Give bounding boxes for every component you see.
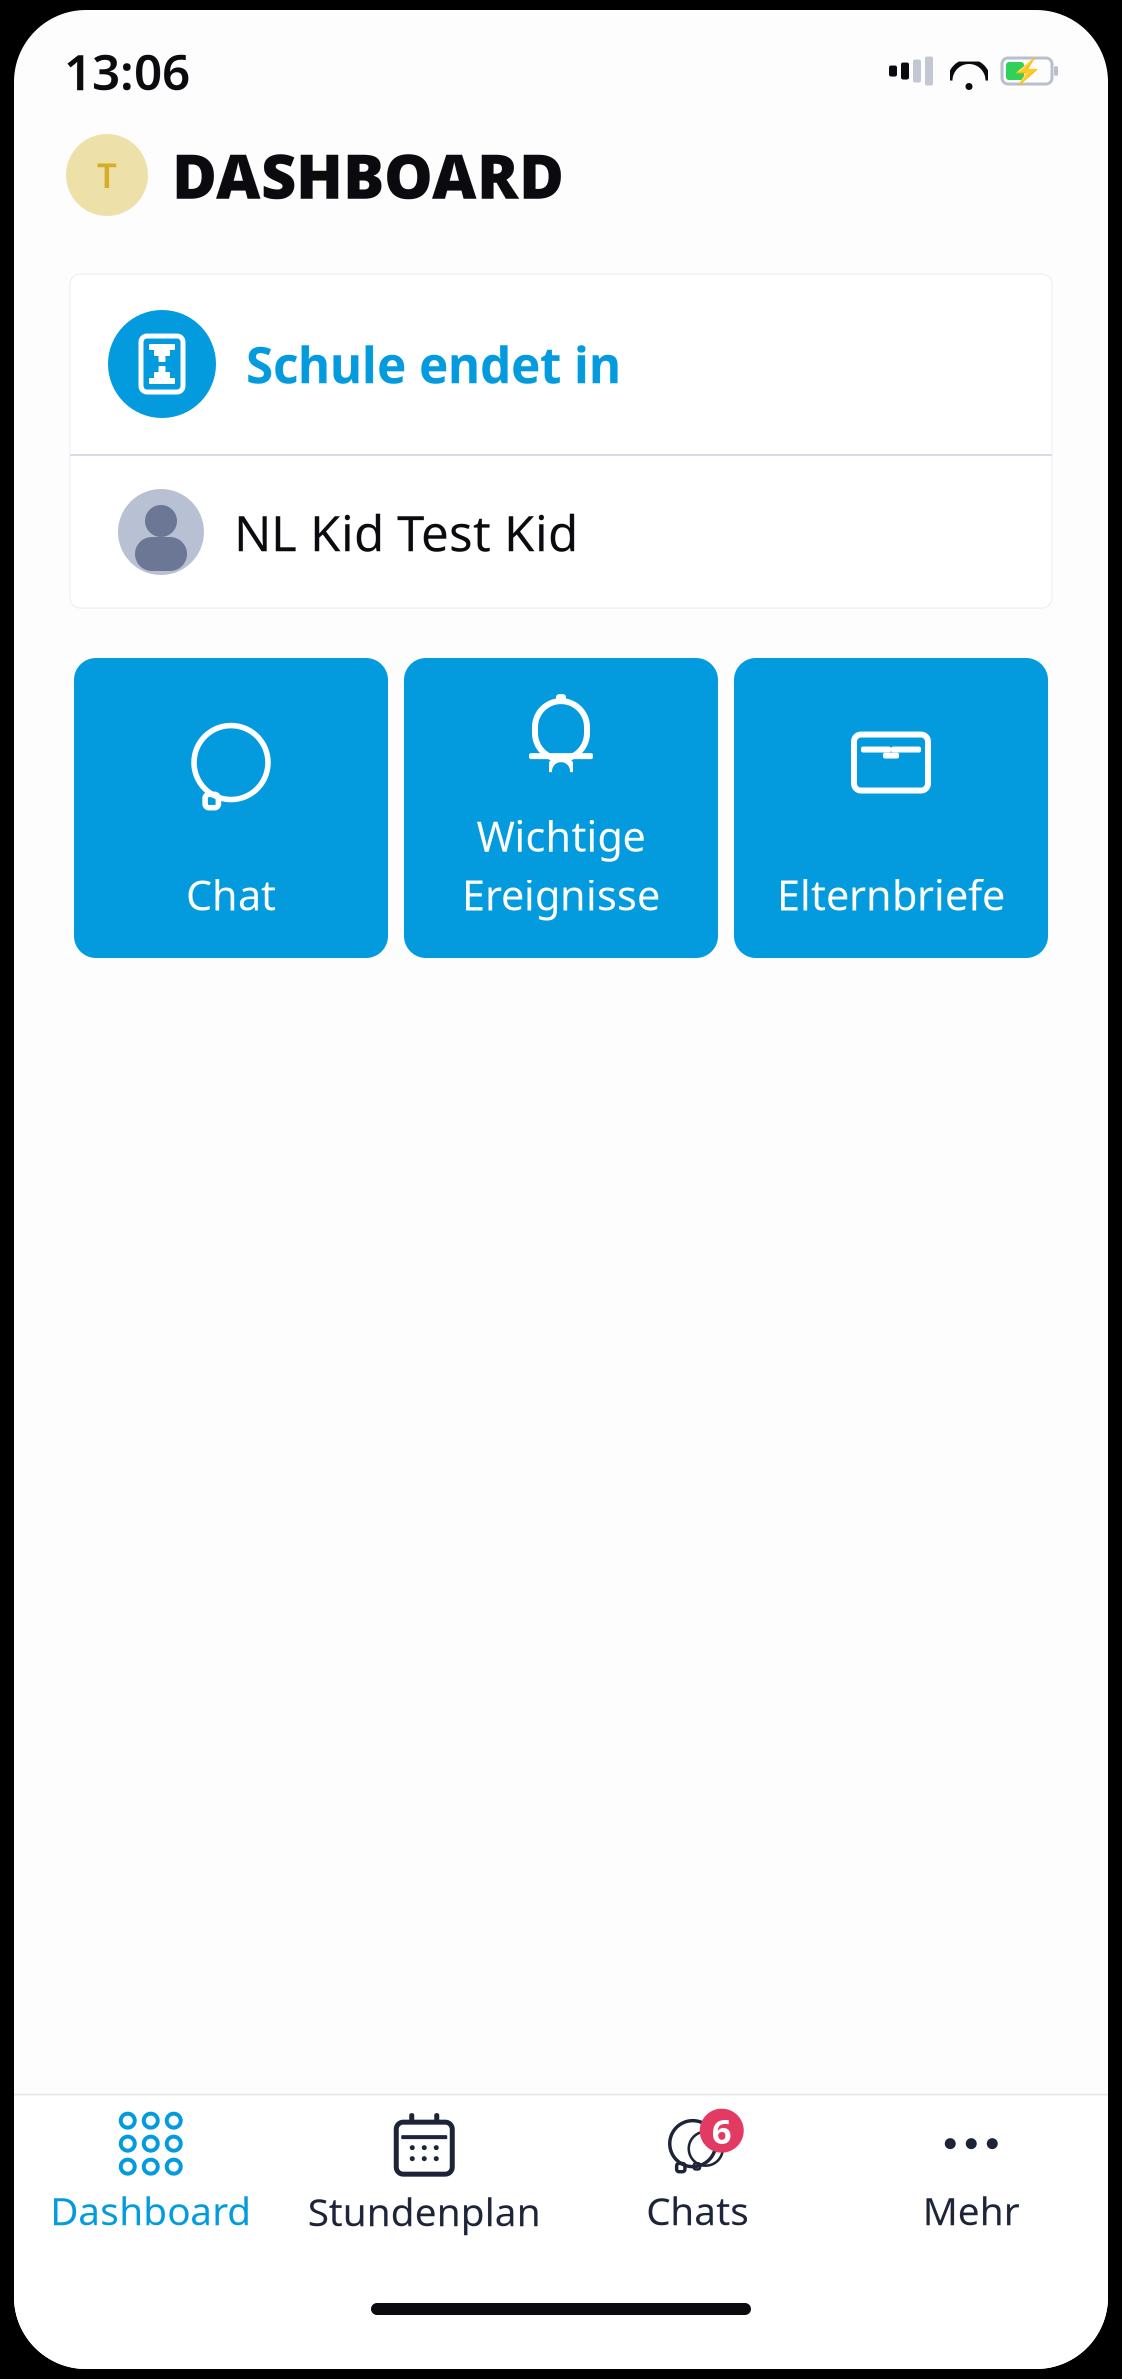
- staticText: Mehr: [923, 2185, 1020, 2236]
- button[interactable]: Schule endet in: [70, 274, 1052, 454]
- staticText: Elternbriefe: [777, 867, 1005, 922]
- staticText: Dashboard: [50, 2185, 251, 2236]
- staticText: Wichtige: [476, 808, 645, 863]
- staticText: 6: [712, 2108, 732, 2154]
- button[interactable]: 6: [561, 2097, 834, 2248]
- staticText: DASHBOARD: [172, 134, 564, 216]
- staticText: 13:06: [64, 38, 190, 104]
- button[interactable]: Stundenplan: [287, 2096, 561, 2249]
- button[interactable]: NL Kid Test Kid: [70, 456, 1052, 608]
- staticText: NL Kid Test Kid: [234, 499, 578, 565]
- button[interactable]: Mehr: [834, 2097, 1108, 2248]
- button[interactable]: Chat: [74, 658, 388, 958]
- staticText: Schule endet in: [246, 331, 621, 397]
- staticText: Chats: [646, 2185, 749, 2236]
- button[interactable]: Wichtige: [404, 658, 718, 958]
- staticText: ⚡: [1011, 56, 1043, 85]
- staticText: Stundenplan: [308, 2186, 541, 2237]
- staticText: Chat: [186, 867, 276, 922]
- staticText: T: [97, 152, 117, 198]
- staticText: Ereignisse: [462, 867, 660, 922]
- button[interactable]: Elternbriefe: [734, 658, 1048, 958]
- button[interactable]: Dashboard: [14, 2097, 287, 2248]
